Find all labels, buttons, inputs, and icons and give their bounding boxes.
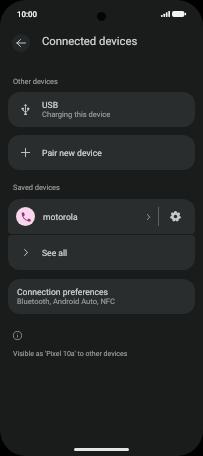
staticText: motorola: [43, 212, 78, 222]
button[interactable]: Pair new device: [8, 135, 195, 170]
staticText: Bluetooth, Android Auto, NFC: [17, 297, 115, 306]
staticText: Saved devices: [13, 183, 60, 192]
staticText: USB: [42, 100, 59, 110]
button[interactable]: motorola: [8, 199, 158, 234]
button[interactable]: USB: [8, 92, 195, 127]
staticText: Other devices: [13, 77, 58, 86]
staticText: Connection preferences: [17, 287, 109, 297]
staticText: Pair new device: [42, 148, 102, 158]
button[interactable]: Connection preferences: [8, 279, 195, 314]
staticText: Charging this device: [42, 110, 111, 119]
staticText: Connected devices: [42, 35, 138, 48]
staticText: See all: [42, 248, 68, 258]
button[interactable]: Device settings: [159, 199, 195, 234]
button[interactable]: Back: [12, 34, 30, 52]
button[interactable]: See all: [8, 235, 195, 270]
staticText: Visible as 'Pixel 10a' to other devices: [13, 349, 128, 357]
staticText: 10:00: [17, 10, 38, 19]
